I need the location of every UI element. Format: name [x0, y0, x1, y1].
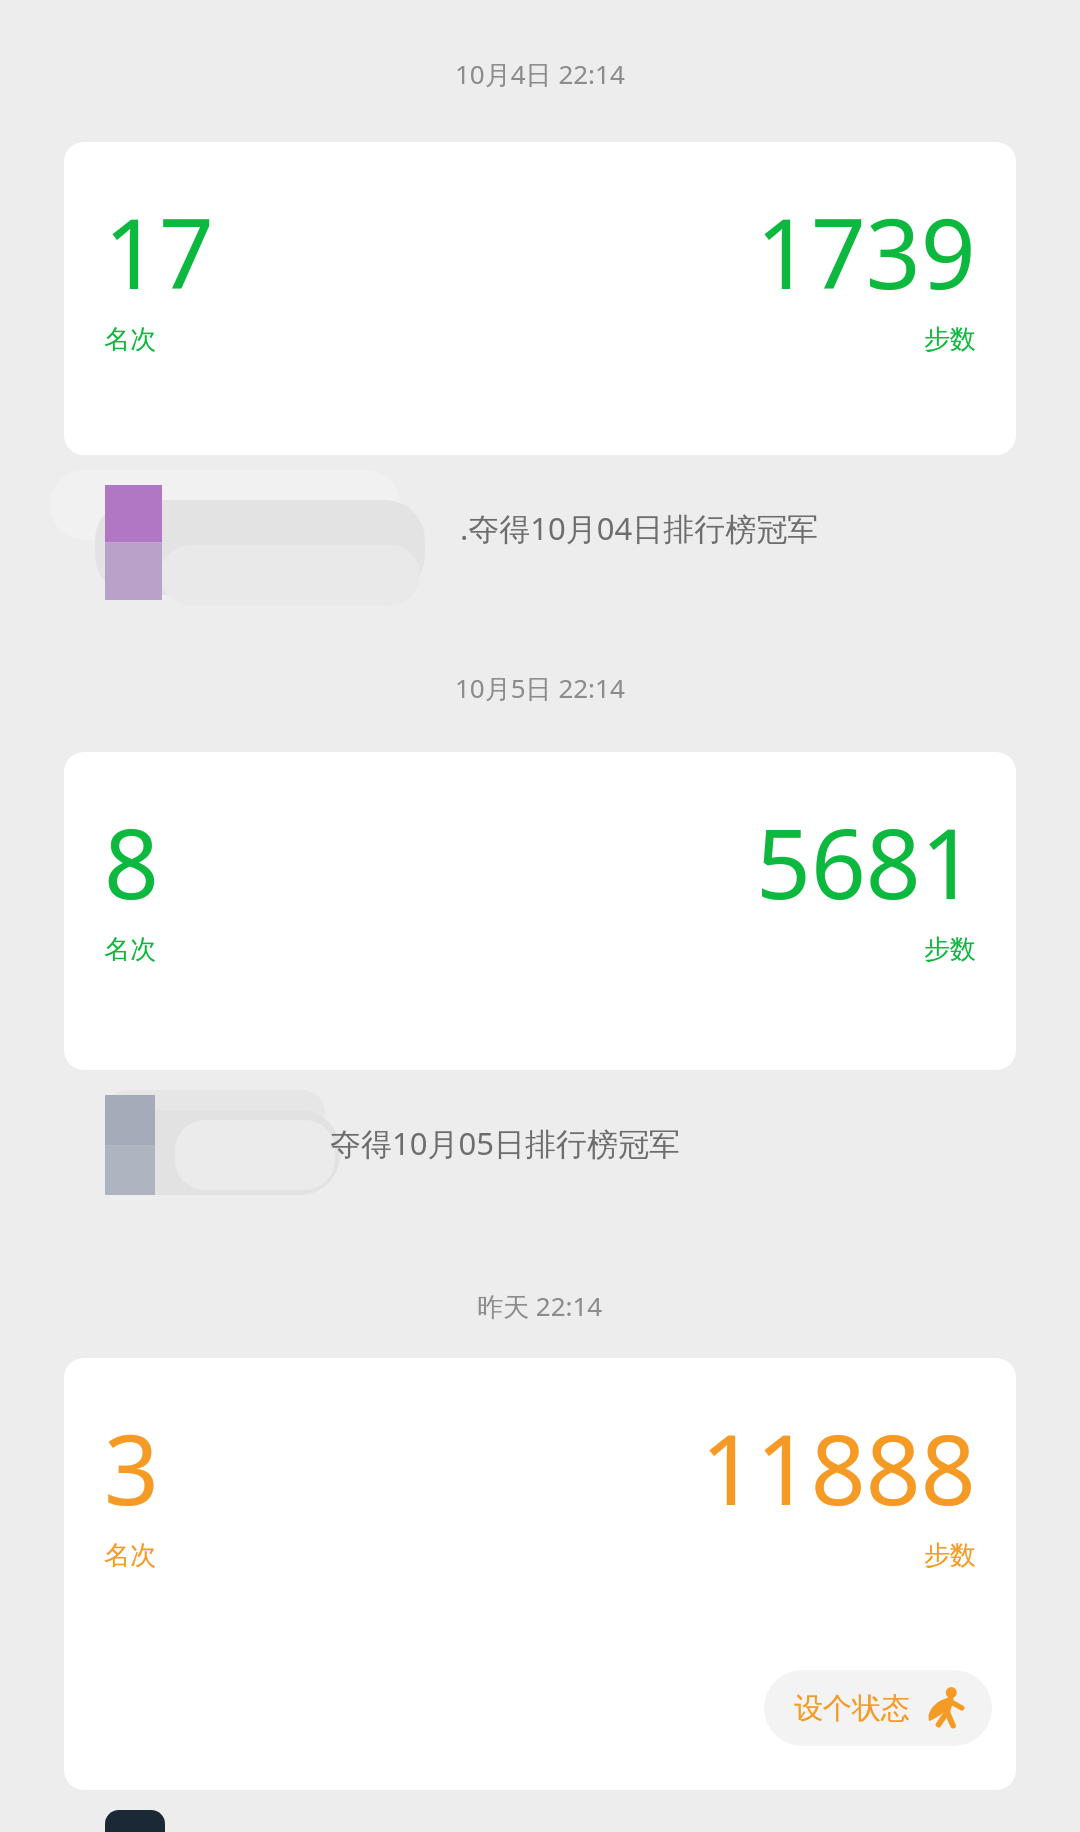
button[interactable]: 设个状态: [764, 1670, 992, 1746]
button[interactable]: 17: [64, 142, 1016, 455]
staticText: 名次: [104, 323, 156, 356]
button[interactable]: 8: [64, 752, 1016, 1070]
staticText: 10月4日 22:14: [455, 56, 625, 92]
staticText: 步数: [924, 323, 976, 356]
staticText: 11888: [701, 1402, 976, 1533]
staticText: 名次: [104, 933, 156, 966]
staticText: 步数: [924, 1539, 976, 1572]
staticText: 8: [104, 796, 159, 927]
button[interactable]: 3: [64, 1358, 1016, 1790]
staticText: 10月5日 22:14: [455, 670, 625, 706]
button[interactable]: 夺得10月05日排行榜冠军: [0, 1085, 1080, 1200]
staticText: 5681: [756, 796, 976, 927]
staticText: 设个状态: [794, 1690, 910, 1727]
staticText: 步数: [924, 933, 976, 966]
button[interactable]: .夺得10月04日排行榜冠军: [0, 455, 1080, 600]
staticText: 1739: [756, 186, 976, 317]
staticText: 3: [104, 1402, 159, 1533]
staticText: 名次: [104, 1539, 156, 1572]
staticText: 17: [104, 186, 214, 317]
staticText: .夺得10月04日排行榜冠军: [460, 507, 819, 549]
staticText: 夺得10月05日排行榜冠军: [330, 1122, 680, 1164]
other: 设个状态: [924, 1686, 968, 1730]
staticText: 昨天 22:14: [477, 1288, 603, 1324]
